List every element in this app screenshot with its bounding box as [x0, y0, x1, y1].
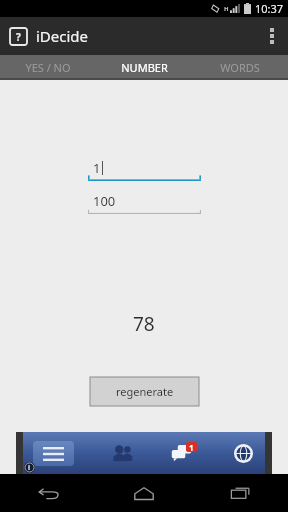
button[interactable]: More options: [256, 17, 288, 55]
button[interactable]: NUMBER: [96, 55, 192, 80]
staticText: iDecide: [36, 26, 89, 46]
other: iDecide app icon: [10, 28, 27, 45]
button[interactable]: Advertisement: [0, 432, 288, 474]
staticText: 78: [133, 311, 155, 337]
button[interactable]: Recent apps: [192, 474, 288, 512]
staticText: 1: [189, 442, 194, 452]
staticText: YES / NO: [25, 60, 71, 75]
button[interactable]: regenerate: [90, 377, 199, 406]
staticText: i: [28, 463, 31, 473]
button[interactable]: Home: [96, 474, 192, 512]
button[interactable]: WORDS: [192, 55, 288, 80]
button[interactable]: 100: [88, 191, 201, 214]
button[interactable]: YES / NO: [0, 55, 96, 80]
button[interactable]: Back: [0, 474, 96, 512]
staticText: WORDS: [220, 60, 260, 75]
button[interactable]: 1: [88, 158, 201, 181]
staticText: NUMBER: [121, 60, 168, 75]
staticText: regenerate: [116, 384, 174, 399]
staticText: 10:37: [255, 1, 284, 16]
staticText: H: [224, 5, 229, 13]
staticText: ?: [16, 30, 21, 44]
staticText: 100: [93, 192, 116, 210]
staticText: 1: [93, 159, 101, 177]
